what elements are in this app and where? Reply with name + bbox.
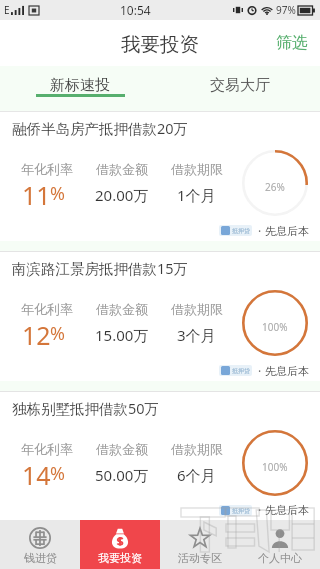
staticText: · xyxy=(258,502,262,518)
staticText: 12 xyxy=(22,318,51,352)
button[interactable]: 交易大厅 xyxy=(160,66,320,112)
staticText: E xyxy=(4,3,10,17)
staticText: 先息后本 xyxy=(265,224,309,238)
staticText: 活动专区 xyxy=(178,551,222,565)
staticText: % xyxy=(50,461,65,486)
staticText: 先息后本 xyxy=(265,503,309,517)
staticText: 借款期限 xyxy=(171,301,223,317)
staticText: 借款期限 xyxy=(171,441,223,457)
staticText: 1个月 xyxy=(177,185,216,205)
staticText: 抵押贷 xyxy=(232,367,250,375)
button[interactable]: 活动专区 xyxy=(160,520,240,569)
button[interactable]: 南滨路江景房抵押借款15万 xyxy=(0,252,320,392)
button[interactable]: 筛选 xyxy=(264,21,320,65)
staticText: 融侨半岛房产抵押借款20万 xyxy=(12,118,189,138)
staticText: 97% xyxy=(276,3,296,17)
staticText: 26% xyxy=(265,180,285,194)
staticText: 20.00万 xyxy=(95,185,149,205)
staticText: 借款金额 xyxy=(96,441,148,457)
staticText: 我要投资 xyxy=(121,32,199,57)
staticText: · xyxy=(258,363,262,379)
staticText: 个人中心 xyxy=(258,551,302,565)
staticText: 100% xyxy=(262,320,288,334)
staticText: 抵押贷 xyxy=(232,507,250,515)
staticText: 交易大厅 xyxy=(210,76,270,95)
staticText: 3个月 xyxy=(177,325,216,345)
staticText: 抵押贷 xyxy=(232,227,250,235)
staticText: % xyxy=(50,321,65,346)
staticText: 年化利率 xyxy=(21,161,73,177)
staticText: 10:54 xyxy=(120,2,151,18)
button[interactable]: 我要投资 xyxy=(80,520,160,569)
staticText: 年化利率 xyxy=(21,301,73,317)
staticText: 11 xyxy=(22,178,51,212)
staticText: 钱进贷 xyxy=(24,551,57,565)
staticText: 南滨路江景房抵押借款15万 xyxy=(12,258,189,278)
staticText: 新标速投 xyxy=(50,76,110,95)
staticText: 6个月 xyxy=(177,465,216,485)
staticText: % xyxy=(50,181,65,206)
staticText: 15.00万 xyxy=(95,325,149,345)
staticText: 借款期限 xyxy=(171,161,223,177)
staticText: 我要投资 xyxy=(98,551,142,565)
staticText: · xyxy=(258,223,262,239)
staticText: 100% xyxy=(262,460,288,474)
button[interactable]: 钱进贷 xyxy=(0,520,80,569)
button[interactable]: 个人中心 xyxy=(240,520,320,569)
button[interactable]: 独栋别墅抵押借款50万 xyxy=(0,392,320,520)
staticText: 年化利率 xyxy=(21,441,73,457)
staticText: 独栋别墅抵押借款50万 xyxy=(12,398,160,418)
staticText: 14 xyxy=(22,458,51,492)
staticText: 筛选 xyxy=(276,33,308,53)
button[interactable]: 融侨半岛房产抵押借款20万 xyxy=(0,112,320,252)
button[interactable]: 新标速投 xyxy=(0,66,160,112)
staticText: 先息后本 xyxy=(265,364,309,378)
staticText: 50.00万 xyxy=(95,465,149,485)
staticText: 借款金额 xyxy=(96,161,148,177)
staticText: 借款金额 xyxy=(96,301,148,317)
